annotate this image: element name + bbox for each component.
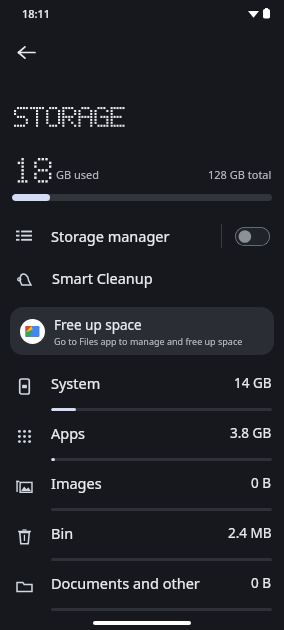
- staticText: GB used: [56, 167, 100, 182]
- button[interactable]: Images: [0, 465, 284, 515]
- staticText: Apps: [51, 423, 230, 443]
- staticText: Free up space: [54, 316, 142, 334]
- staticText: Bin: [51, 523, 228, 543]
- staticText: 18:11: [22, 6, 51, 21]
- button[interactable]: Storage manager toggle: [235, 227, 270, 246]
- button[interactable]: System: [0, 365, 284, 415]
- button[interactable]: Storage manager: [0, 215, 284, 257]
- staticText: Go to Files app to manage and free up sp…: [54, 335, 243, 347]
- button[interactable]: Bin: [0, 515, 284, 565]
- staticText: 0 B: [251, 474, 272, 492]
- staticText: Images: [51, 473, 251, 493]
- staticText: Storage manager: [51, 226, 221, 246]
- staticText: Smart Cleanup: [52, 268, 153, 288]
- button[interactable]: Free up space: [10, 307, 274, 355]
- staticText: 3.8 GB: [230, 424, 272, 442]
- button[interactable]: Smart Cleanup: [0, 257, 284, 299]
- staticText: Documents and other: [51, 573, 251, 593]
- button[interactable]: Back: [8, 34, 44, 70]
- staticText: 128 GB total: [208, 167, 272, 182]
- staticText: 2.4 MB: [228, 524, 272, 542]
- button[interactable]: Apps: [0, 415, 284, 465]
- staticText: 14 GB: [234, 374, 272, 392]
- staticText: System: [51, 373, 234, 393]
- button[interactable]: Documents and other: [0, 565, 284, 615]
- staticText: 0 B: [251, 574, 272, 592]
